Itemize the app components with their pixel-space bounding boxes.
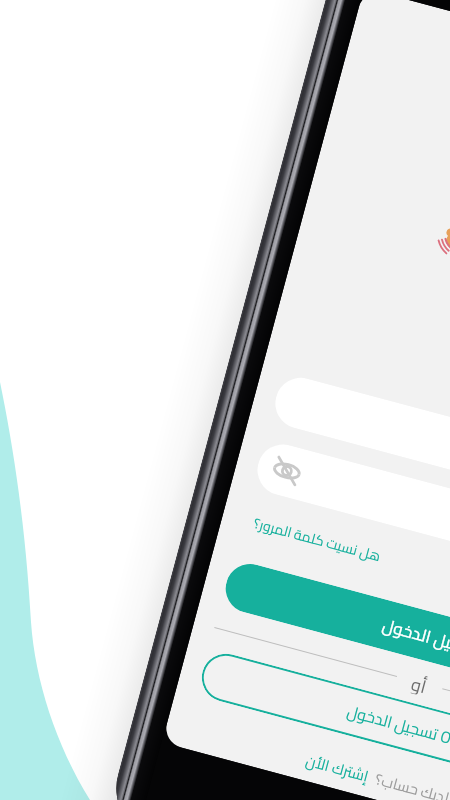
staticText: ليس لديك حساب؟ bbox=[366, 763, 450, 800]
staticText: تسجيل الدخول OTP bbox=[344, 696, 450, 757]
button[interactable]: هل نسيت كلمة المرور؟ bbox=[250, 508, 450, 589]
staticText: هل نسيت كلمة المرور؟ bbox=[250, 510, 384, 569]
button[interactable]: إشترك الأن bbox=[184, 713, 450, 800]
staticText: أو bbox=[409, 668, 430, 697]
button[interactable]: Show password bbox=[252, 439, 450, 598]
button[interactable] bbox=[270, 372, 450, 531]
other: Show password bbox=[270, 454, 303, 488]
button[interactable]: تسجيل الدخول bbox=[220, 558, 450, 716]
staticText: تسجيل الدخول bbox=[379, 609, 450, 666]
staticText: إشترك الأن bbox=[303, 746, 373, 790]
button[interactable]: تسجيل الدخول OTP bbox=[196, 648, 450, 800]
